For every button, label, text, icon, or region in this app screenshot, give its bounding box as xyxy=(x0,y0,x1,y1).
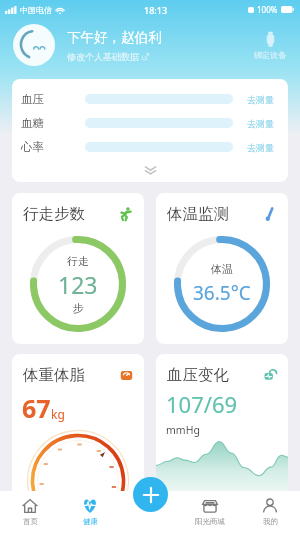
button[interactable]: 健康 xyxy=(60,491,120,533)
staticText: 107/69 xyxy=(166,389,238,419)
button[interactable]: 行走步数 xyxy=(12,193,144,344)
button[interactable]: 添加记录 xyxy=(133,477,168,512)
staticText: 下午好，赵伯利 xyxy=(67,29,162,46)
staticText: 健康 xyxy=(83,517,98,526)
staticText: 血糖 xyxy=(21,116,44,130)
button[interactable]: 血压变化 xyxy=(156,354,288,499)
staticText: 100% xyxy=(257,4,278,15)
staticText: 体温监测 xyxy=(167,204,229,224)
staticText: 行走 xyxy=(67,254,89,268)
staticText: 体温 xyxy=(211,262,233,276)
staticText: 67 xyxy=(22,391,51,425)
button[interactable]: 心率 xyxy=(12,135,288,159)
button[interactable]: 体温监测 xyxy=(156,193,288,344)
staticText: 36.5°C xyxy=(193,280,251,306)
button[interactable]: 体重体脂 xyxy=(12,354,144,499)
staticText: 阳光商城 xyxy=(195,517,225,526)
staticText: 首页 xyxy=(23,517,38,526)
staticText: 行走步数 xyxy=(23,204,85,224)
staticText: 18:13 xyxy=(144,4,168,16)
button[interactable]: 首页 xyxy=(0,491,60,533)
button[interactable]: 我的 xyxy=(240,491,300,533)
button[interactable]: 血糖 xyxy=(12,111,288,135)
staticText: 去测量 xyxy=(247,94,274,105)
button[interactable]: 个人头像 xyxy=(13,24,55,66)
staticText: 去测量 xyxy=(247,118,274,129)
staticText: 123 xyxy=(58,269,98,300)
staticText: 血压 xyxy=(21,92,44,106)
staticText: 血压变化 xyxy=(167,365,229,385)
staticText: mmHg xyxy=(166,423,200,437)
staticText: 心率 xyxy=(21,140,44,154)
staticText: 中国电信 xyxy=(20,5,52,15)
staticText: 修改个人基础数据 xyxy=(67,51,139,62)
button[interactable]: 阳光商城 xyxy=(180,491,240,533)
button[interactable]: 血压 xyxy=(12,87,288,111)
staticText: kg xyxy=(51,406,65,422)
staticText: 步 xyxy=(73,301,84,315)
staticText: 去测量 xyxy=(247,142,274,153)
staticText: 体重体脂 xyxy=(23,365,85,385)
staticText: 绑定设备 xyxy=(254,50,286,60)
staticText: 我的 xyxy=(263,517,278,526)
button[interactable]: 展开更多 xyxy=(12,159,288,182)
button[interactable]: 绑定设备 xyxy=(249,29,291,62)
